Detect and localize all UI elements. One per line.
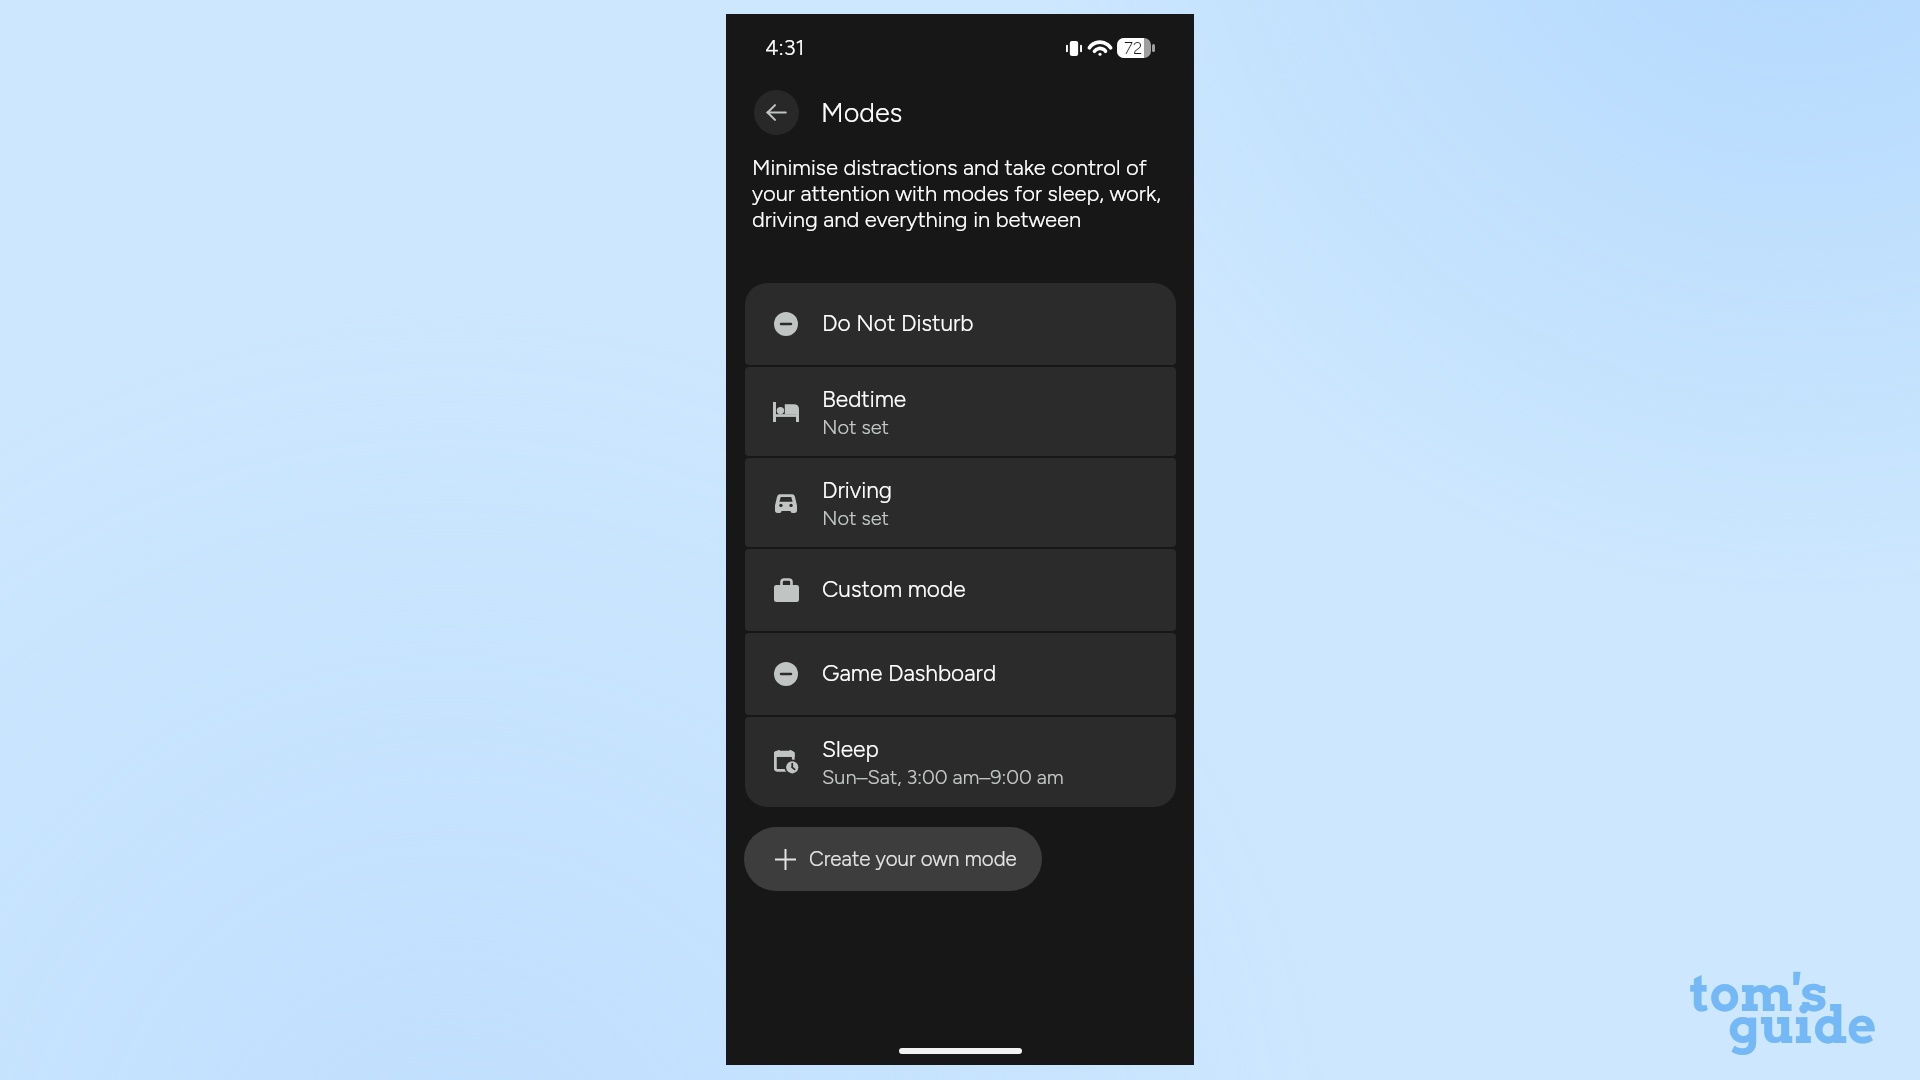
staticText: Minimise distractions and take control o… bbox=[752, 154, 1168, 232]
staticText: Sun–Sat, 3:00 am–9:00 am bbox=[822, 765, 1064, 789]
staticText: 4:31 bbox=[765, 34, 805, 60]
staticText: Bedtime bbox=[822, 385, 907, 412]
button[interactable]: Custom mode bbox=[745, 549, 1176, 631]
button[interactable]: Game Dashboard bbox=[745, 633, 1176, 715]
staticText: Not set bbox=[822, 415, 889, 439]
button[interactable]: Create your own mode bbox=[744, 827, 1042, 891]
staticText: Do Not Disturb bbox=[822, 309, 974, 336]
staticText: Driving bbox=[822, 476, 893, 503]
staticText: Sleep bbox=[822, 735, 879, 762]
button[interactable]: Bedtime bbox=[745, 367, 1176, 456]
staticText: Modes bbox=[821, 96, 903, 128]
staticText: Not set bbox=[822, 506, 889, 530]
staticText: Custom mode bbox=[822, 575, 966, 602]
staticText: 72 bbox=[1124, 38, 1143, 58]
button[interactable]: Back bbox=[754, 90, 799, 135]
button[interactable]: Sleep bbox=[745, 717, 1176, 807]
staticText: Game Dashboard bbox=[822, 659, 997, 686]
button[interactable]: Do Not Disturb bbox=[745, 283, 1176, 365]
staticText: guide bbox=[1728, 995, 1877, 1055]
staticText: tom's bbox=[1690, 963, 1828, 1023]
button[interactable]: Driving bbox=[745, 458, 1176, 547]
staticText: Create your own mode bbox=[809, 847, 1017, 872]
